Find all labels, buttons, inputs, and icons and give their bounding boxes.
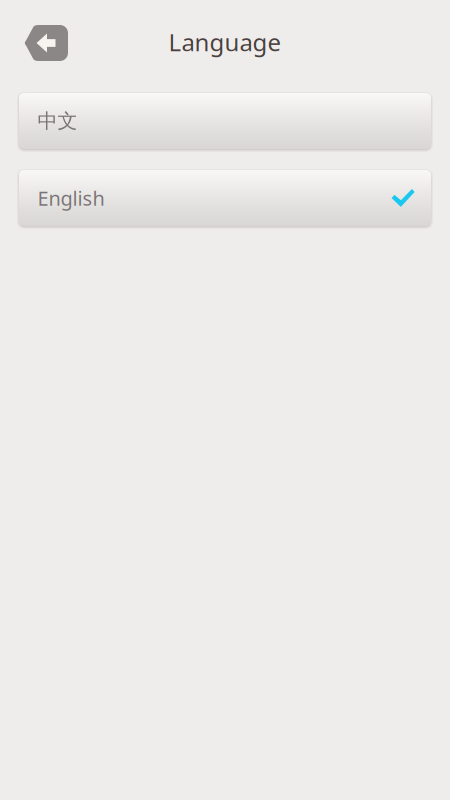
button[interactable]: English <box>19 170 431 226</box>
button[interactable]: Back <box>24 25 68 61</box>
staticText: English <box>37 185 104 211</box>
button[interactable]: 中文 <box>19 93 431 149</box>
staticText: 中文 <box>37 109 77 133</box>
staticText: Language <box>168 26 281 58</box>
